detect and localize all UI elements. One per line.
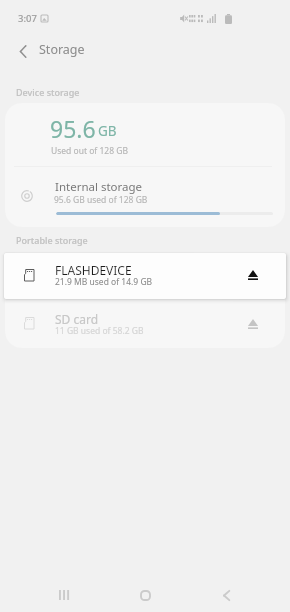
staticText: Portable storage: [16, 234, 88, 246]
button[interactable]: Back: [186, 570, 267, 612]
staticText: 11 GB used of 58.2 GB: [55, 325, 144, 337]
button[interactable]: [5, 171, 285, 227]
button[interactable]: Home: [105, 570, 186, 612]
staticText: 21.9 MB used of 14.9 GB: [55, 276, 153, 288]
staticText: 3:07: [18, 12, 37, 25]
staticText: Device storage: [16, 86, 80, 98]
staticText: 95.6: [50, 113, 96, 144]
button[interactable]: Navigate up: [10, 38, 36, 64]
staticText: 95.6 GB used of 128 GB: [54, 194, 148, 206]
button[interactable]: Recent apps: [23, 570, 105, 612]
staticText: SD card: [55, 311, 99, 327]
button[interactable]: Eject: [242, 313, 264, 335]
staticText: Internal storage: [55, 179, 143, 195]
button[interactable]: Eject: [242, 264, 264, 286]
staticText: GB: [98, 122, 117, 140]
staticText: Storage: [39, 41, 85, 58]
staticText: FLASHDEVICE: [55, 262, 132, 278]
staticText: Used out of 128 GB: [51, 145, 128, 157]
button[interactable]: [4, 253, 286, 299]
